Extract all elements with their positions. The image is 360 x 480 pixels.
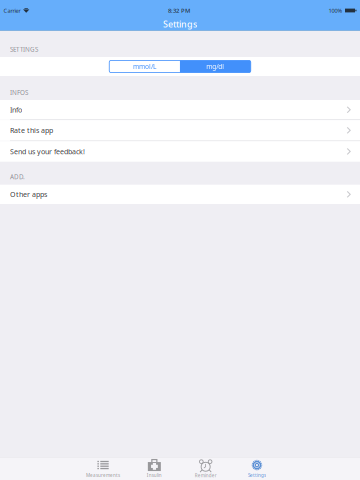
button[interactable]: Info: [0, 100, 360, 119]
button[interactable]: Measurements: [77, 457, 129, 480]
staticText: SETTINGS: [10, 45, 38, 54]
button[interactable]: Insulin: [129, 457, 180, 480]
staticText: ADD.: [10, 173, 25, 181]
button[interactable]: Send us your feedback!: [0, 141, 360, 162]
button[interactable]: Other apps: [0, 185, 360, 204]
staticText: Info: [10, 105, 22, 114]
staticText: Settings: [163, 18, 197, 30]
button[interactable]: Reminder: [180, 457, 231, 480]
staticText: Other apps: [10, 190, 47, 199]
staticText: mg/dl: [206, 62, 224, 71]
button[interactable]: Rate this app: [0, 120, 360, 141]
staticText: mmol/L: [133, 62, 156, 71]
staticText: Send us your feedback!: [10, 147, 85, 156]
staticText: Rate this app: [10, 126, 53, 135]
button[interactable]: Settings: [231, 457, 283, 480]
staticText: Measurements: [86, 472, 120, 478]
staticText: INFOS: [10, 88, 28, 97]
button[interactable]: mmol/L: [109, 60, 180, 73]
staticText: 100%: [328, 7, 342, 14]
staticText: 8:32 PM: [168, 7, 190, 14]
button[interactable]: mg/dl: [180, 60, 251, 73]
staticText: Settings: [248, 472, 266, 478]
staticText: Insulin: [147, 472, 162, 478]
staticText: Carrier: [3, 7, 20, 14]
staticText: Reminder: [195, 472, 217, 478]
